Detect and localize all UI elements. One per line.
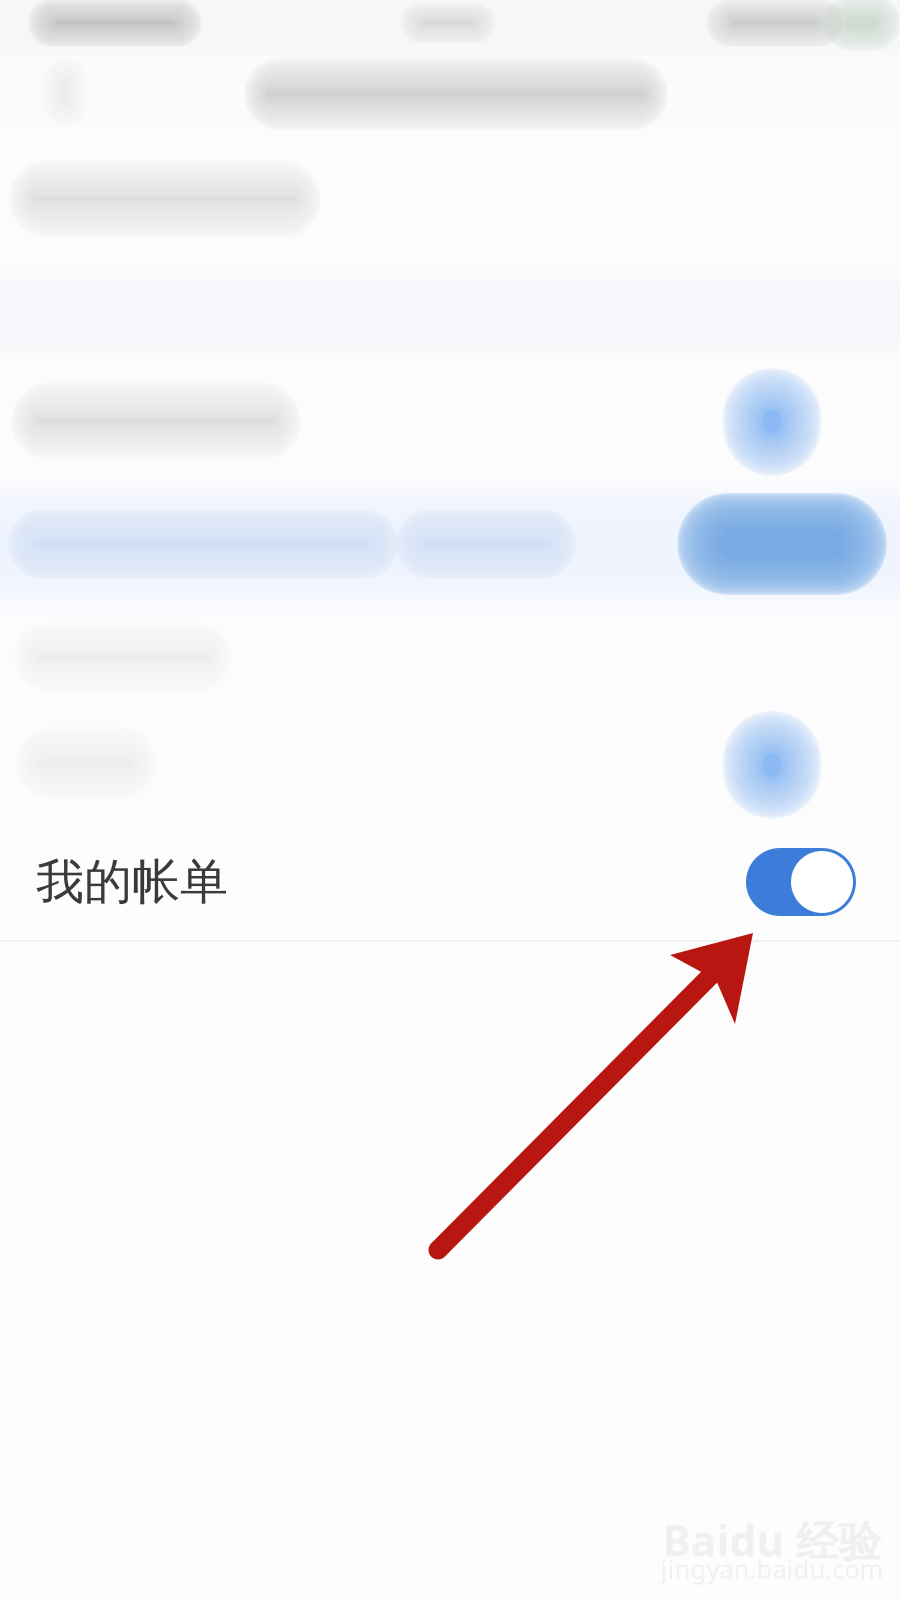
button[interactable]: Back [10, 48, 120, 136]
button[interactable] [0, 0, 900, 1600]
button[interactable] [0, 0, 900, 1600]
staticText: jingyan.baidu.com [660, 1552, 883, 1586]
staticText: 我的帐单 [36, 852, 228, 911]
button[interactable] [677, 493, 887, 595]
staticText: Baidu 经验 [662, 1512, 881, 1568]
button[interactable] [0, 0, 900, 1600]
button[interactable]: 我的帐单 [0, 822, 900, 942]
button[interactable] [0, 0, 900, 1600]
button[interactable] [0, 0, 900, 1600]
button[interactable] [0, 0, 900, 1600]
button[interactable] [0, 0, 900, 1600]
